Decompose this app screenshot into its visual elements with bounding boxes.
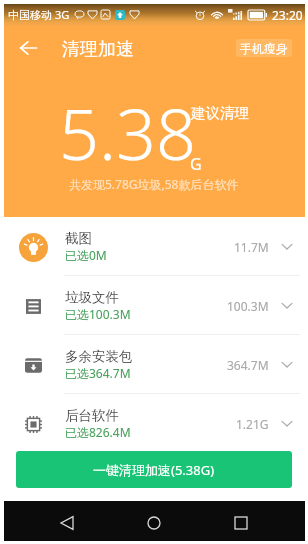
button[interactable]: Recent apps xyxy=(221,503,261,543)
button[interactable]: Back xyxy=(11,34,45,62)
button[interactable]: 一键清理加速(5.38G) xyxy=(16,451,292,488)
button[interactable]: 多余安装包 xyxy=(0,335,308,394)
staticText: 一键清理加速(5.38G) xyxy=(93,461,215,479)
staticText: 已选100.3M xyxy=(65,306,131,322)
staticText: 11.7M xyxy=(234,239,269,255)
staticText: 5.38 xyxy=(59,85,196,180)
staticText: 1.21G xyxy=(236,416,269,432)
staticText: 截图 xyxy=(65,230,92,247)
staticText: 已选0M xyxy=(65,247,107,263)
staticText: 3G xyxy=(55,7,70,22)
staticText: 共发现5.78G垃圾,58款后台软件 xyxy=(69,176,239,192)
staticText: 建议清理 xyxy=(191,104,249,122)
button[interactable]: 后台软件 xyxy=(0,394,308,453)
staticText: 后台软件 xyxy=(65,407,119,424)
staticText: 已选826.4M xyxy=(65,424,131,440)
button[interactable]: 垃圾文件 xyxy=(0,276,308,335)
button[interactable]: 截图 xyxy=(0,217,308,276)
staticText: 已选364.7M xyxy=(65,365,131,381)
staticText: G xyxy=(190,153,202,175)
staticText: 手机瘦身 xyxy=(240,41,288,56)
staticText: 中国移动 xyxy=(8,8,52,22)
staticText: 23:20 xyxy=(272,7,303,23)
button[interactable]: 手机瘦身 xyxy=(236,39,292,57)
button[interactable]: Home xyxy=(134,503,174,543)
staticText: 清理加速 xyxy=(62,38,134,61)
staticText: 100.3M xyxy=(227,298,269,314)
button[interactable]: Back xyxy=(47,503,87,543)
staticText: 364.7M xyxy=(227,357,269,373)
staticText: 垃圾文件 xyxy=(65,289,119,306)
staticText: 多余安装包 xyxy=(65,348,133,365)
